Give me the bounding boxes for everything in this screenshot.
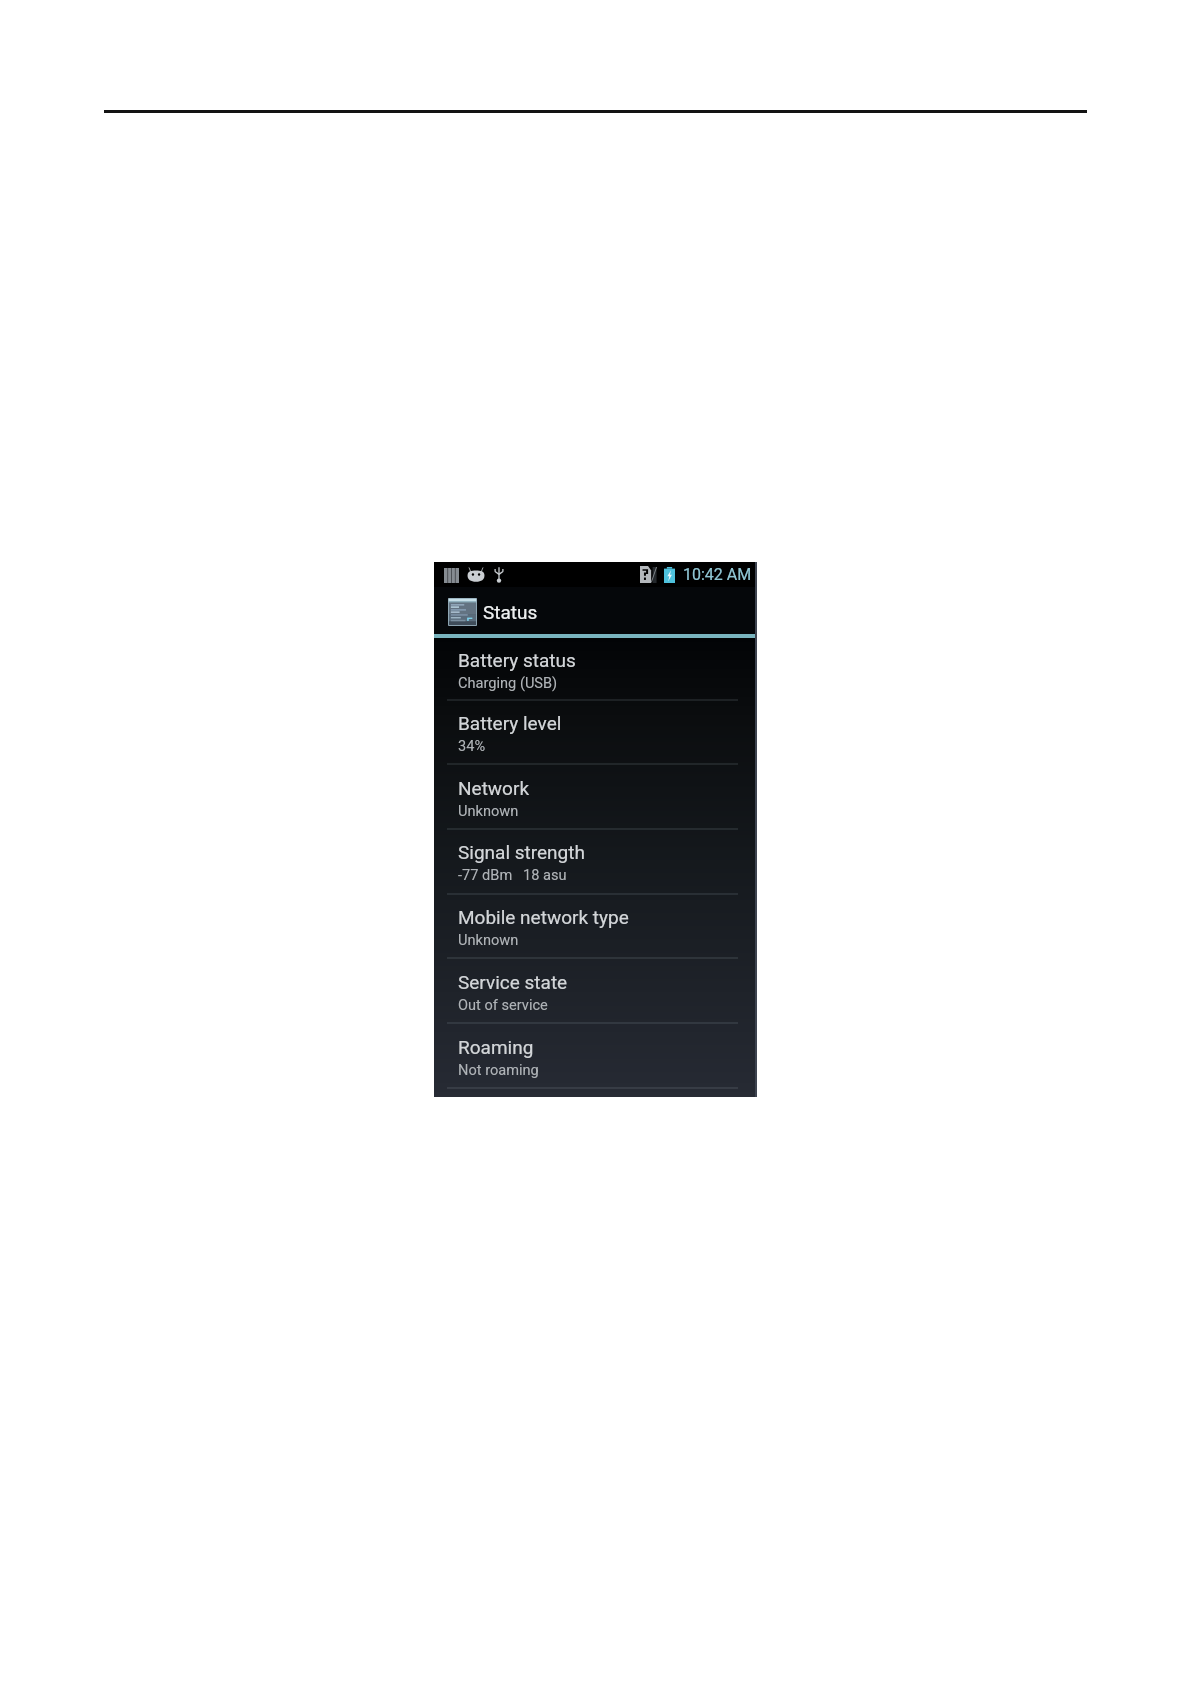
staticText: Signal strength	[458, 841, 585, 863]
button[interactable]: Mobile network type	[434, 894, 757, 959]
staticText: Out of service	[458, 996, 548, 1013]
staticText: Unknown	[458, 802, 519, 819]
button[interactable]: Signal strength	[434, 829, 757, 894]
staticText: Charging (USB)	[458, 674, 558, 691]
staticText: -77 dBm 18 asu	[458, 866, 567, 883]
staticText: Mobile network type	[458, 906, 629, 928]
staticText: Unknown	[458, 931, 519, 948]
staticText: Network	[458, 777, 530, 799]
button[interactable]: Network	[434, 765, 757, 830]
staticText: 34%	[458, 737, 486, 754]
staticText: 10:42 AM	[683, 565, 752, 584]
staticText: Status	[483, 601, 538, 623]
staticText: Battery level	[458, 712, 562, 734]
button[interactable]: Battery level	[434, 700, 757, 765]
staticText: Not roaming	[458, 1061, 539, 1078]
button[interactable]: Service state	[434, 959, 757, 1024]
staticText: Service state	[458, 971, 568, 993]
staticText: Battery status	[458, 649, 576, 671]
staticText: Roaming	[458, 1036, 534, 1058]
button[interactable]: Roaming	[434, 1024, 757, 1089]
button[interactable]: Status, navigate up	[434, 587, 757, 634]
button[interactable]: Battery status	[434, 637, 757, 700]
